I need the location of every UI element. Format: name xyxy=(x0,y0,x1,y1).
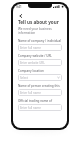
staticText: 9:41 xyxy=(16,5,22,9)
button[interactable]: Select company location xyxy=(18,74,62,81)
staticText: Enter website URL xyxy=(20,61,45,65)
button[interactable]: Enter website URL xyxy=(18,59,62,66)
button[interactable]: Back xyxy=(17,12,24,19)
staticText: Name of person creating this account xyxy=(18,84,62,88)
button[interactable]: Enter full name xyxy=(18,104,62,111)
button[interactable]: Enter full name xyxy=(18,44,62,51)
staticText: We need your business information so we … xyxy=(18,27,62,35)
staticText: Enter full name xyxy=(20,106,41,110)
staticText: Enter full name xyxy=(20,46,41,50)
staticText: Enter full name xyxy=(20,91,41,95)
staticText: Company location xyxy=(18,69,44,73)
staticText: Tell us about your business xyxy=(18,19,62,25)
button[interactable]: Enter full name xyxy=(18,89,62,96)
staticText: Name of company / individual xyxy=(18,39,61,43)
staticText: Company website / URL xyxy=(18,54,52,58)
staticText: Official trading name of business xyxy=(18,99,62,103)
staticText: Select company location xyxy=(20,76,38,80)
